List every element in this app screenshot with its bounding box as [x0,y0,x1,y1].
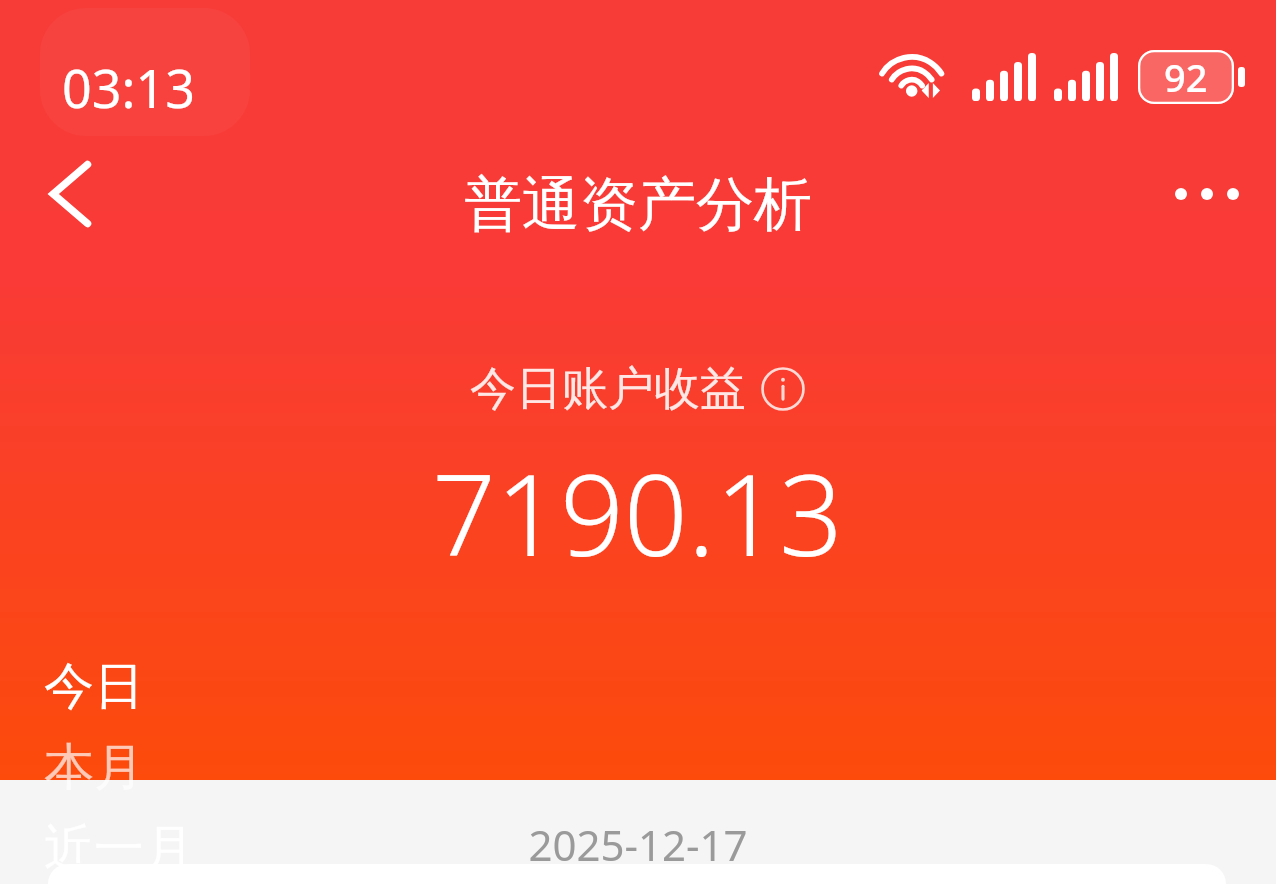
button[interactable]: Back [20,144,120,244]
staticText: 7190.13 [432,436,844,589]
staticText: 近一月 [44,817,194,880]
button[interactable]: 本月 [44,736,144,799]
staticText: 今日账户收益 [470,360,746,418]
button[interactable]: 近一月 [44,817,194,880]
staticText: 今日 [44,655,144,718]
staticText: 2025-12-17 [528,816,748,873]
staticText: 普通资产分析 [464,168,812,241]
staticText: 92 [1164,51,1208,103]
staticText: 03:13 [62,52,195,123]
staticText: 本月 [44,736,144,799]
button[interactable]: More options [1152,149,1262,239]
button[interactable]: 今日 [44,655,144,718]
button[interactable]: 今日账户收益 说明 [464,358,812,420]
